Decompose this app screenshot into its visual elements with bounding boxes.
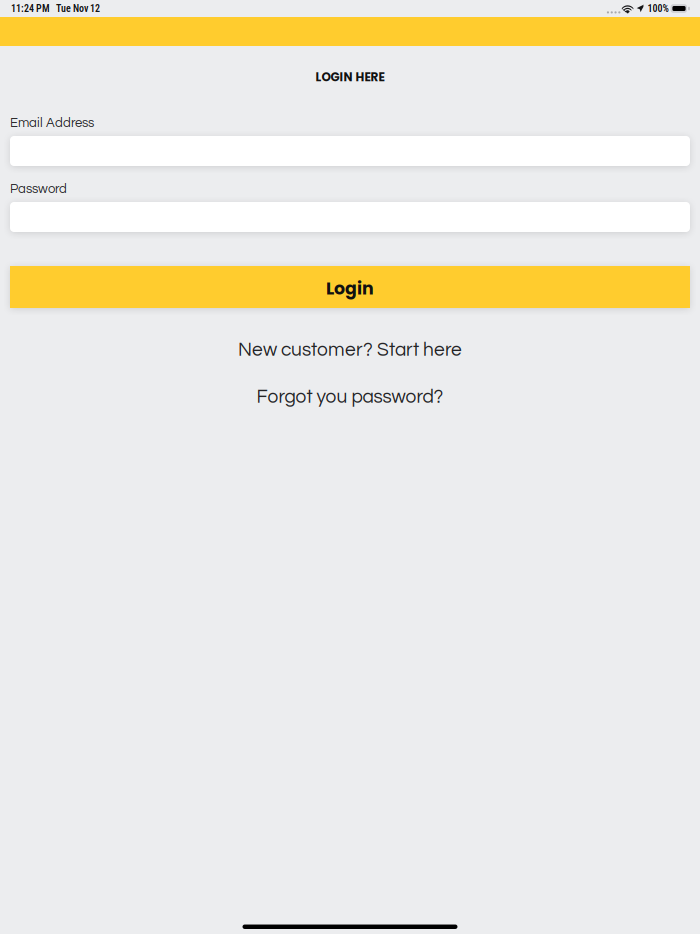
staticText: Tue Nov 12 bbox=[56, 3, 100, 14]
button[interactable]: Login bbox=[10, 266, 690, 308]
staticText: LOGIN HERE bbox=[315, 69, 384, 85]
staticText: Login bbox=[326, 276, 374, 301]
staticText: Password bbox=[10, 182, 67, 196]
staticText: Forgot you password? bbox=[256, 387, 443, 407]
staticText: 100% bbox=[647, 3, 668, 14]
button[interactable]: New customer? Start here bbox=[10, 338, 690, 362]
staticText: 11:24 PM bbox=[11, 3, 50, 14]
button[interactable]: Forgot you password? bbox=[10, 385, 690, 409]
staticText: Email Address bbox=[10, 116, 94, 130]
staticText: New customer? Start here bbox=[238, 340, 462, 360]
